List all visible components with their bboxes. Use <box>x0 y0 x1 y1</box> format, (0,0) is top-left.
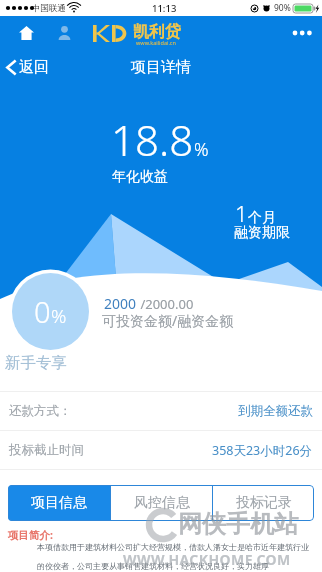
button[interactable]: 0 <box>12 273 89 350</box>
staticText: 90% <box>274 2 291 14</box>
staticText: WWW.HACKHOME.COM <box>123 550 291 569</box>
staticText: 风控信息 <box>134 494 190 512</box>
staticText: www.kailidai.cn <box>136 39 176 46</box>
staticText: 投标截止时间 <box>9 442 84 458</box>
button[interactable]: 投标记录 <box>213 485 314 521</box>
button[interactable]: 还款方式： <box>0 392 322 430</box>
staticText: 融资期限 <box>234 224 290 242</box>
staticText: 个月 <box>248 209 276 227</box>
staticText: % <box>194 137 209 162</box>
button[interactable]: 风控信息 <box>111 485 212 521</box>
staticText: 网侠手机站 <box>178 509 298 539</box>
staticText: 18.8 <box>111 111 194 168</box>
staticText: 凯利贷 <box>133 22 181 42</box>
staticText: 到期全额还款 <box>238 403 313 419</box>
staticText: 新手专享 <box>5 353 67 373</box>
staticText: 2000 <box>104 294 137 313</box>
staticText: 投标记录 <box>236 494 292 512</box>
button[interactable]: 投标截止时间 <box>0 431 322 469</box>
staticText: 项目简介: <box>8 528 53 542</box>
button[interactable]: 项目信息 <box>8 485 110 521</box>
button[interactable]: Back <box>0 50 57 85</box>
staticText: 358天23小时26分 <box>212 442 313 459</box>
staticText: 年化收益 <box>112 168 168 186</box>
staticText: 项目信息 <box>31 494 87 512</box>
staticText: 可投资金额/融资金额 <box>102 311 234 330</box>
staticText: 11:13 <box>152 2 177 15</box>
staticText: 0 <box>34 292 51 331</box>
button[interactable]: More options <box>288 19 316 47</box>
staticText: /2000.00 <box>137 295 194 313</box>
staticText: 中国联通 <box>32 3 66 14</box>
staticText: 返回 <box>19 58 49 77</box>
staticText: 项目详情 <box>131 58 191 77</box>
staticText: 本项借款用于建筑材料公司扩大经营规模，借款人潘女士是哈市近年建筑行业的佼佼者，公… <box>37 542 315 572</box>
button[interactable]: Home <box>14 21 38 45</box>
staticText: 1 <box>235 198 248 228</box>
button[interactable]: Profile <box>52 21 76 45</box>
staticText: 还款方式： <box>9 403 72 419</box>
staticText: % <box>51 303 67 329</box>
